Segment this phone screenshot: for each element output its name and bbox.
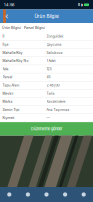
button[interactable]: Tool — [0, 187, 19, 202]
staticText: Ada — [2, 67, 8, 71]
staticText: Marka — [2, 100, 12, 104]
staticText: İl — [2, 34, 4, 38]
staticText: Saltukova — [46, 51, 62, 55]
staticText: 1 Adet — [46, 59, 55, 63]
staticText: Mahalle/Köy — [2, 51, 22, 55]
staticText: ‹ — [5, 11, 8, 20]
staticText: Ürün Bilgisi — [2, 26, 21, 30]
button[interactable]: Ürün Bilgisi — [2, 23, 21, 32]
button[interactable]: Tool — [37, 187, 56, 202]
staticText: ıl — [78, 2, 80, 7]
staticText: Zemin Tipi — [2, 108, 19, 112]
staticText: Çaycuma — [46, 42, 61, 46]
staticText: Zonguldak — [46, 34, 63, 38]
staticText: Tapu Alanı — [2, 83, 19, 87]
staticText: 14:56 — [4, 2, 14, 7]
staticText: Ana Taşınmaz — [46, 108, 69, 112]
button[interactable]: Tool — [74, 187, 93, 202]
staticText: Ürün Bilgisi — [34, 13, 58, 19]
staticText: ◗ — [81, 3, 83, 7]
staticText: 45 — [46, 75, 50, 79]
staticText: Parsel Bilgisi — [24, 26, 45, 30]
staticText: İlçe — [2, 42, 8, 46]
staticText: — — [46, 116, 49, 120]
staticText: Kavaklıdere — [46, 100, 65, 104]
staticText: Kıymeti — [2, 116, 14, 120]
staticText: 2.487,00 — [46, 83, 59, 87]
button[interactable]: Tool — [19, 187, 37, 202]
staticText: Tarla — [46, 91, 54, 95]
staticText: Mahalle/Köy No — [2, 59, 28, 63]
button[interactable]: Parsel Bilgisi — [24, 23, 45, 32]
staticText: Düzenleme gönder — [31, 127, 62, 131]
button[interactable]: Düzenleme gönder — [0, 122, 93, 136]
staticText: Mevkii — [2, 91, 13, 95]
button[interactable]: Tool — [56, 187, 74, 202]
staticText: Parsel — [2, 75, 12, 79]
button[interactable]: Back — [0, 9, 9, 23]
staticText: 123 — [46, 67, 51, 71]
